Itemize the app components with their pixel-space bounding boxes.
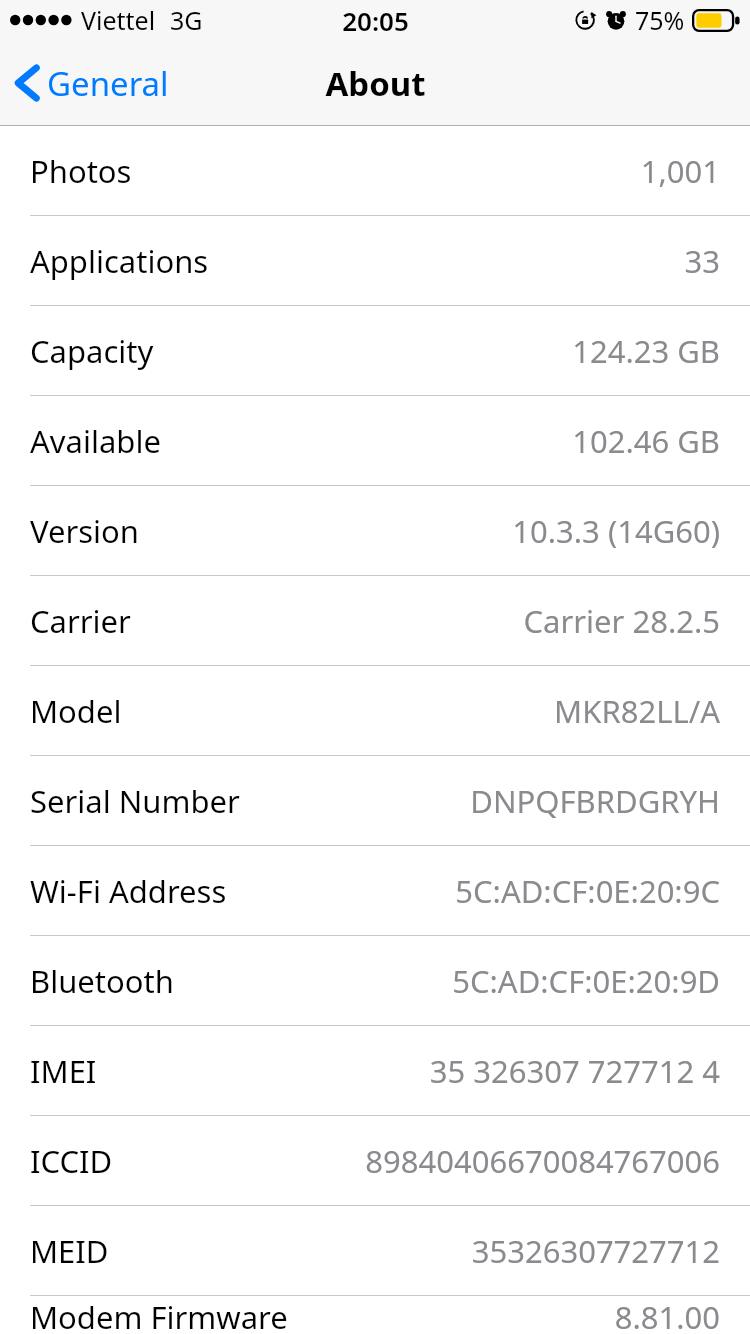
staticText: 1,001: [640, 150, 720, 192]
button[interactable]: Modem Firmware: [0, 1296, 750, 1334]
button[interactable]: Serial Number: [0, 756, 750, 845]
staticText: Available: [30, 420, 161, 462]
staticText: Bluetooth: [30, 960, 174, 1002]
staticText: MEID: [30, 1230, 109, 1272]
staticText: Version: [30, 510, 140, 552]
staticText: 35 326307 727712 4: [429, 1050, 720, 1092]
staticText: 5C:AD:CF:0E:20:9C: [455, 870, 720, 912]
button[interactable]: Model: [0, 666, 750, 755]
staticText: Viettel: [81, 3, 156, 37]
staticText: Wi-Fi Address: [30, 870, 227, 912]
button[interactable]: Photos: [0, 126, 750, 215]
staticText: MKR82LL/A: [554, 690, 720, 732]
button[interactable]: IMEI: [0, 1026, 750, 1115]
button[interactable]: Version: [0, 486, 750, 575]
staticText: Capacity: [30, 330, 154, 372]
staticText: Serial Number: [30, 780, 240, 822]
button[interactable]: Carrier: [0, 576, 750, 665]
button[interactable]: Bluetooth: [0, 936, 750, 1025]
staticText: Carrier: [30, 600, 131, 642]
staticText: 35326307727712: [471, 1230, 720, 1272]
staticText: Applications: [30, 240, 209, 282]
staticText: 102.46 GB: [572, 420, 720, 462]
staticText: About: [325, 61, 426, 106]
staticText: IMEI: [30, 1050, 97, 1092]
staticText: General: [47, 61, 169, 106]
staticText: 124.23 GB: [572, 330, 720, 372]
button[interactable]: Wi-Fi Address: [0, 846, 750, 935]
staticText: Carrier 28.2.5: [523, 600, 720, 642]
staticText: Photos: [30, 150, 132, 192]
button[interactable]: Available: [0, 396, 750, 485]
staticText: ICCID: [30, 1140, 113, 1182]
staticText: 89840406670084767006: [365, 1140, 720, 1182]
button[interactable]: Applications: [0, 216, 750, 305]
staticText: 10.3.3 (14G60): [512, 510, 720, 552]
staticText: Model: [30, 690, 122, 732]
staticText: 8.81.00: [614, 1296, 720, 1334]
button[interactable]: ICCID: [0, 1116, 750, 1205]
staticText: 20:05: [342, 3, 409, 38]
staticText: 33: [684, 240, 720, 282]
staticText: 75%: [635, 3, 685, 37]
staticText: DNPQFBRDGRYH: [470, 780, 720, 822]
staticText: 5C:AD:CF:0E:20:9D: [452, 960, 720, 1002]
button[interactable]: General: [14, 40, 169, 126]
staticText: 3G: [170, 3, 203, 37]
button[interactable]: Capacity: [0, 306, 750, 395]
staticText: Modem Firmware: [30, 1296, 288, 1334]
button[interactable]: MEID: [0, 1206, 750, 1295]
